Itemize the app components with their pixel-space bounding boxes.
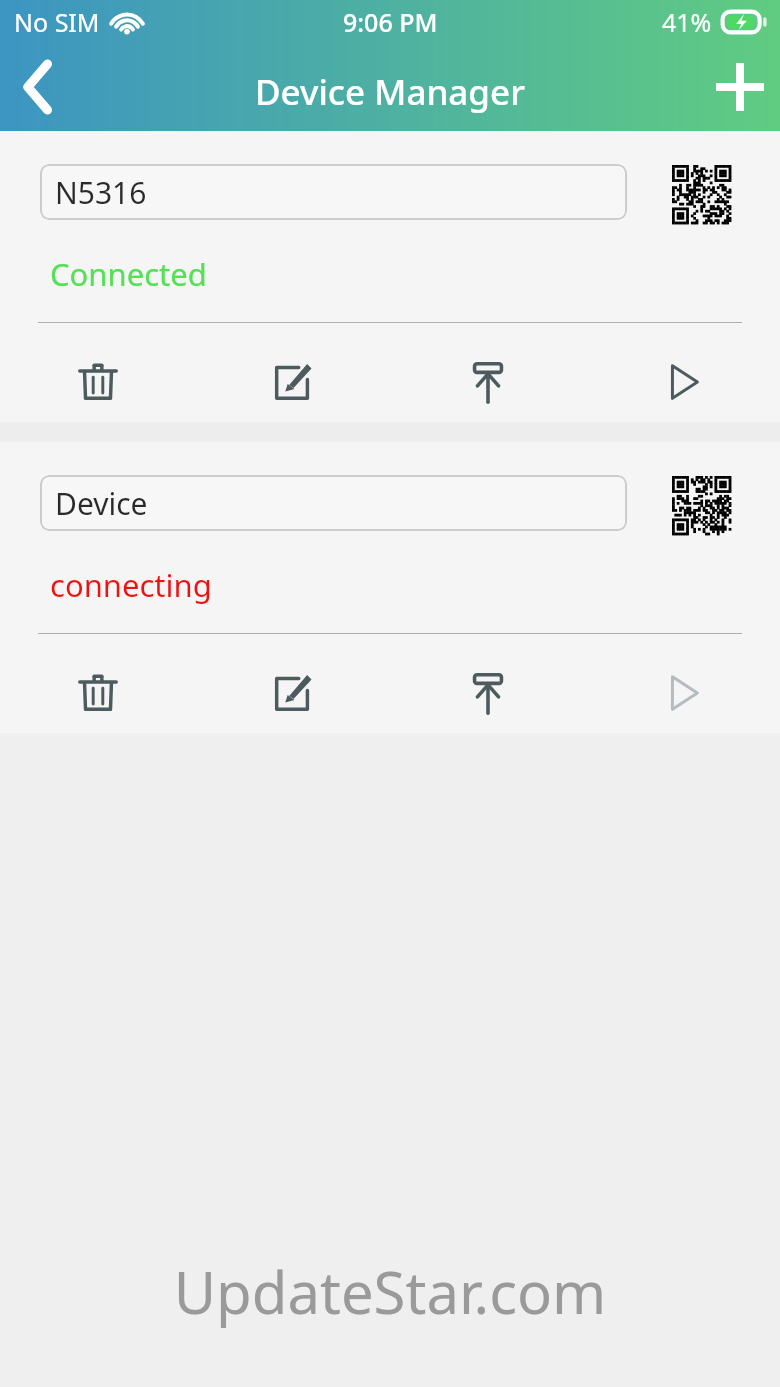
button[interactable]: Back xyxy=(0,47,76,127)
staticText: 41% xyxy=(662,5,712,39)
button[interactable]: Edit xyxy=(195,343,390,421)
staticText: Device xyxy=(55,483,148,524)
staticText: N5316 xyxy=(55,172,147,213)
staticText: 9:06 PM xyxy=(343,5,438,39)
staticText: Device Manager xyxy=(255,68,525,116)
button[interactable]: Device xyxy=(40,475,627,531)
button[interactable]: Delete xyxy=(0,343,195,421)
button[interactable]: Delete xyxy=(0,654,195,732)
button[interactable]: Play xyxy=(585,343,780,421)
button[interactable]: Upload xyxy=(390,343,585,421)
staticText: Connected xyxy=(50,253,207,295)
staticText: No SIM xyxy=(14,5,100,39)
button[interactable]: Edit xyxy=(195,654,390,732)
button[interactable]: Add device xyxy=(700,47,780,127)
button[interactable]: N5316 xyxy=(40,164,627,220)
button[interactable]: QR code xyxy=(672,165,731,224)
button[interactable]: Play xyxy=(585,654,780,732)
staticText: UpdateStar.com xyxy=(0,1252,780,1331)
button[interactable]: QR code xyxy=(672,476,731,535)
button[interactable]: Upload xyxy=(390,654,585,732)
staticText: connecting xyxy=(50,564,212,606)
